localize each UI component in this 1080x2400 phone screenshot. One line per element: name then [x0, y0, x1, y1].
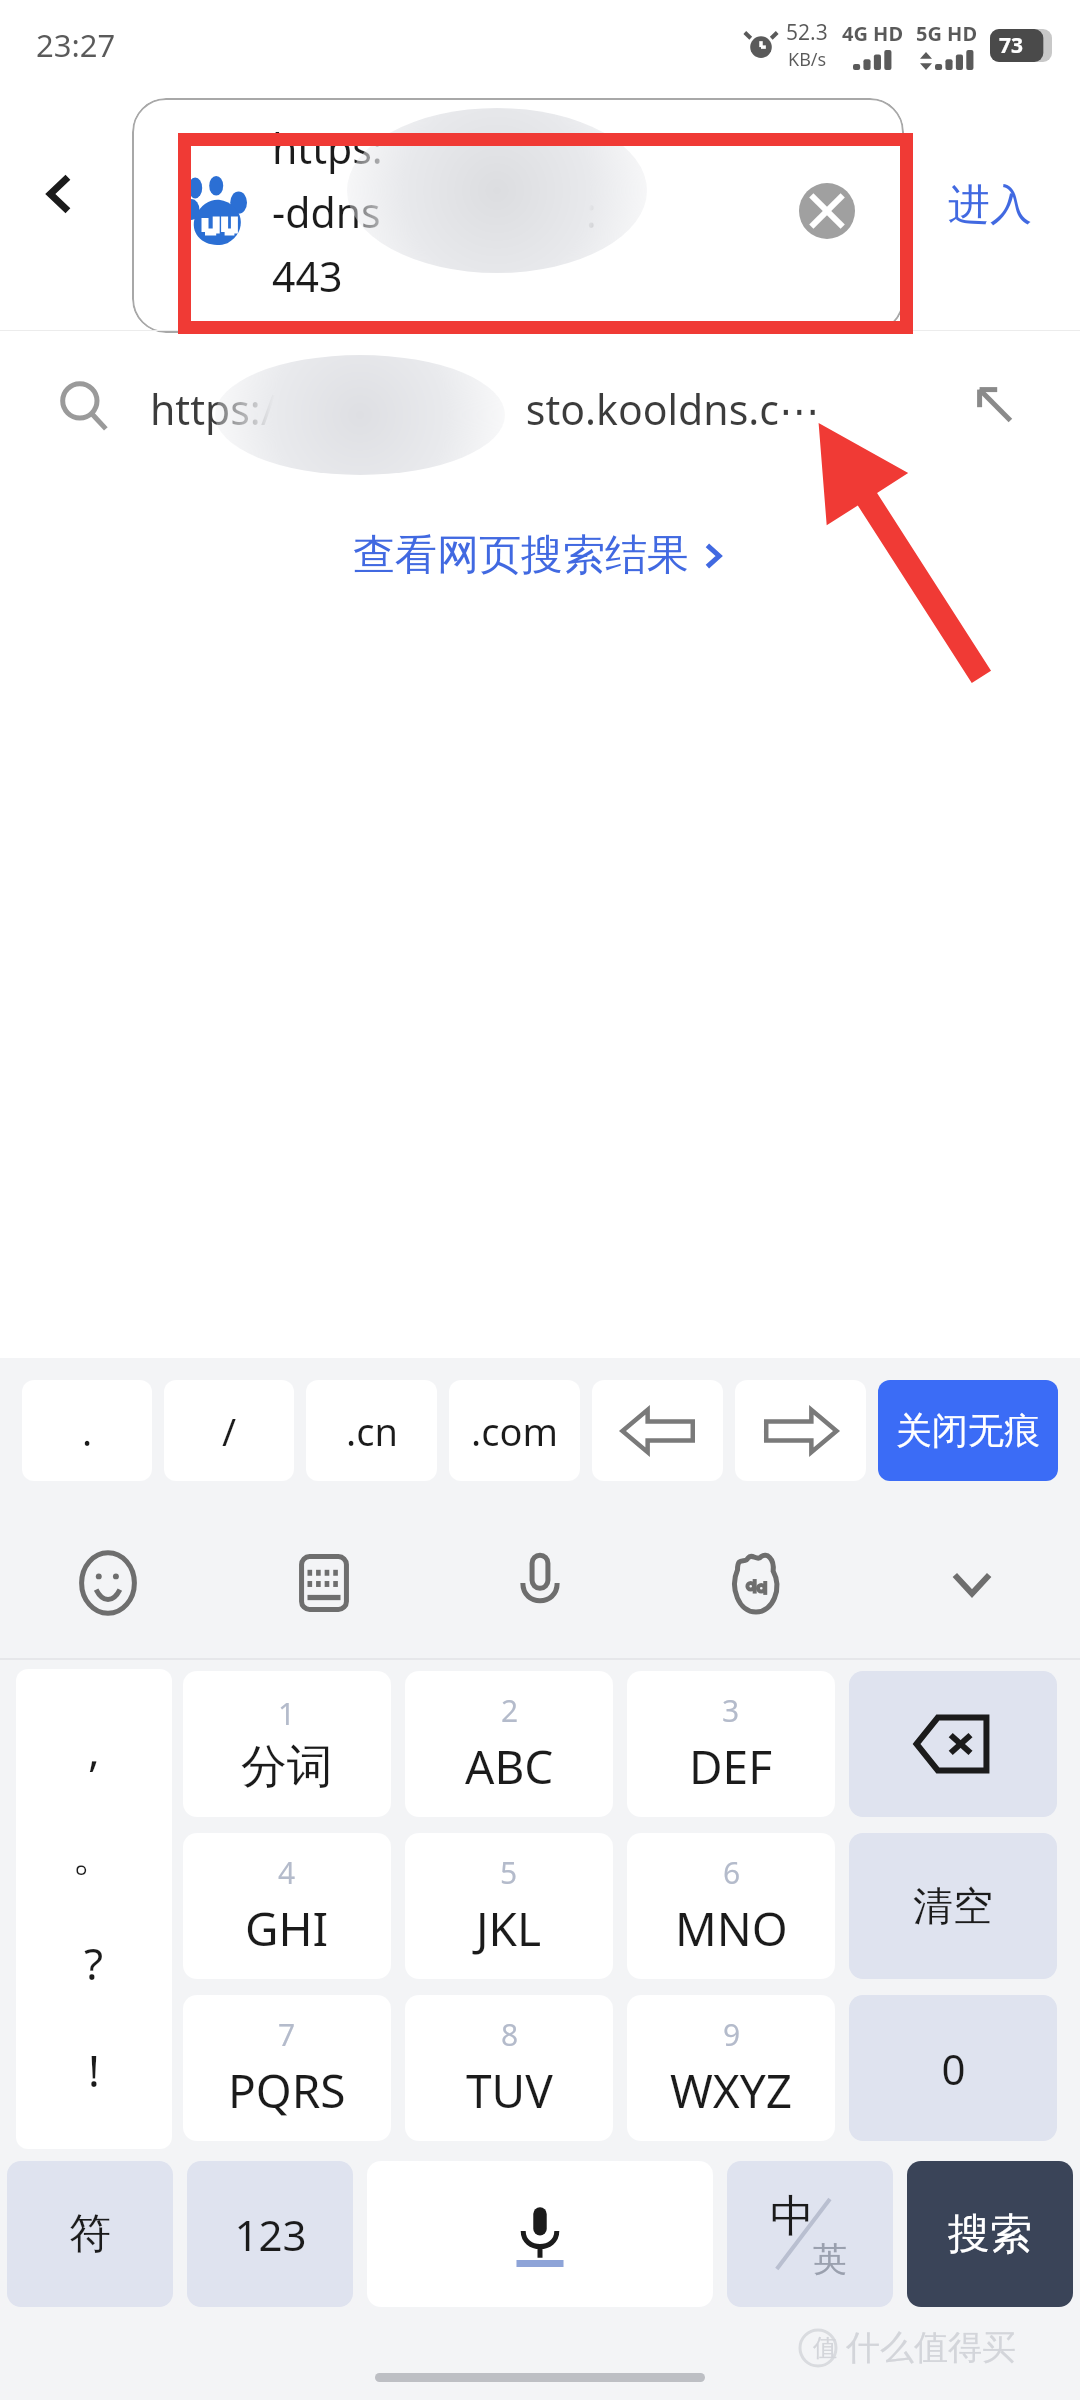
- button[interactable]: 符: [7, 2161, 173, 2307]
- staticText: 0: [941, 2040, 966, 2097]
- button[interactable]: 8: [405, 1995, 613, 2141]
- staticText: -ddns .cn:: [272, 184, 597, 240]
- button[interactable]: 0: [849, 1995, 1057, 2141]
- staticText: MNO: [675, 1897, 788, 1960]
- button[interactable]: 4: [183, 1833, 391, 1979]
- button[interactable]: Emoji: [0, 1503, 216, 1663]
- button[interactable]: Delete: [849, 1671, 1057, 1817]
- staticText: 443: [272, 248, 343, 304]
- button[interactable]: Back: [16, 150, 104, 238]
- staticText: 5: [500, 1852, 518, 1893]
- staticText: 查看网页搜索结果: [353, 529, 689, 582]
- button[interactable]: 清空: [849, 1833, 1057, 1979]
- button[interactable]: Clear: [792, 176, 862, 246]
- staticText: 52.3: [786, 18, 828, 47]
- button[interactable]: Hide keyboard: [864, 1503, 1080, 1663]
- button[interactable]: Keyboard layout: [216, 1503, 432, 1663]
- staticText: !: [88, 2040, 100, 2100]
- staticText: TUV: [466, 2059, 553, 2122]
- staticText: 73: [999, 31, 1024, 60]
- staticText: 。: [72, 1828, 116, 1883]
- button[interactable]: Move right: [735, 1380, 866, 1481]
- staticText: DEF: [689, 1735, 773, 1798]
- button[interactable]: .com: [449, 1380, 580, 1481]
- staticText: 7: [278, 2014, 296, 2055]
- staticText: 中: [770, 2189, 814, 2244]
- staticText: 分词: [241, 1738, 333, 1796]
- staticText: ?: [84, 1933, 104, 1993]
- button[interactable]: !: [16, 2016, 172, 2123]
- staticText: 4: [278, 1852, 296, 1893]
- button[interactable]: 3: [627, 1671, 835, 1817]
- staticText: 1: [278, 1693, 296, 1734]
- staticText: 清空: [913, 1881, 993, 1931]
- staticText: KB/s: [788, 47, 827, 72]
- staticText: PQRS: [228, 2059, 346, 2122]
- button[interactable]: 2: [405, 1671, 613, 1817]
- button[interactable]: 123: [187, 2161, 353, 2307]
- staticText: .: [82, 1405, 93, 1457]
- staticText: https:// sto.kooldns.c⋯: [150, 381, 820, 437]
- button[interactable]: 7: [183, 1995, 391, 2141]
- staticText: 关闭无痕: [896, 1408, 1040, 1453]
- button[interactable]: .: [22, 1380, 152, 1481]
- staticText: 9: [723, 2014, 741, 2055]
- staticText: 123: [234, 2206, 307, 2263]
- staticText: JKL: [476, 1897, 542, 1960]
- button[interactable]: Voice input: [367, 2161, 713, 2307]
- button[interactable]: 查看网页搜索结果: [333, 519, 747, 592]
- staticText: ,: [88, 1719, 100, 1779]
- staticText: 8: [501, 2014, 519, 2055]
- button[interactable]: https:// sto.kooldns.c⋯: [0, 345, 1080, 465]
- button[interactable]: 进入: [925, 160, 1055, 250]
- staticText: 符: [69, 2208, 111, 2261]
- staticText: 5G HD: [916, 20, 978, 47]
- button[interactable]: .cn: [306, 1380, 437, 1481]
- button[interactable]: Switch language: [727, 2161, 893, 2307]
- button[interactable]: Move left: [592, 1380, 723, 1481]
- staticText: 搜索: [948, 2208, 1032, 2261]
- staticText: WXYZ: [670, 2059, 793, 2122]
- staticText: 进入: [948, 179, 1032, 232]
- button[interactable]: /: [164, 1380, 294, 1481]
- button[interactable]: 关闭无痕: [878, 1380, 1058, 1481]
- button[interactable]: 5: [405, 1833, 613, 1979]
- staticText: 2: [501, 1690, 519, 1731]
- button[interactable]: Fill query: [960, 370, 1030, 440]
- button[interactable]: ?: [16, 1909, 172, 2016]
- button[interactable]: 9: [627, 1995, 835, 2141]
- staticText: GHI: [245, 1897, 329, 1960]
- button[interactable]: 1: [183, 1671, 391, 1817]
- staticText: 6: [723, 1852, 741, 1893]
- button[interactable]: https:: [132, 98, 904, 333]
- button[interactable]: Baidu: [648, 1503, 864, 1663]
- staticText: .com: [471, 1405, 558, 1457]
- staticText: https:: [272, 120, 383, 176]
- staticText: ABC: [465, 1735, 554, 1798]
- button[interactable]: 6: [627, 1833, 835, 1979]
- staticText: 英: [813, 2238, 847, 2281]
- button[interactable]: ,: [16, 1695, 172, 1802]
- staticText: 3: [722, 1690, 740, 1731]
- staticText: 值: [813, 2333, 837, 2363]
- staticText: /: [222, 1405, 237, 1457]
- staticText: .cn: [346, 1405, 398, 1457]
- staticText: 4G HD: [842, 20, 904, 47]
- button[interactable]: Voice input: [432, 1503, 648, 1663]
- button[interactable]: 。: [16, 1802, 172, 1909]
- staticText: 什么值得买: [846, 2326, 1016, 2369]
- button[interactable]: 搜索: [907, 2161, 1073, 2307]
- staticText: 23:27: [36, 24, 116, 66]
